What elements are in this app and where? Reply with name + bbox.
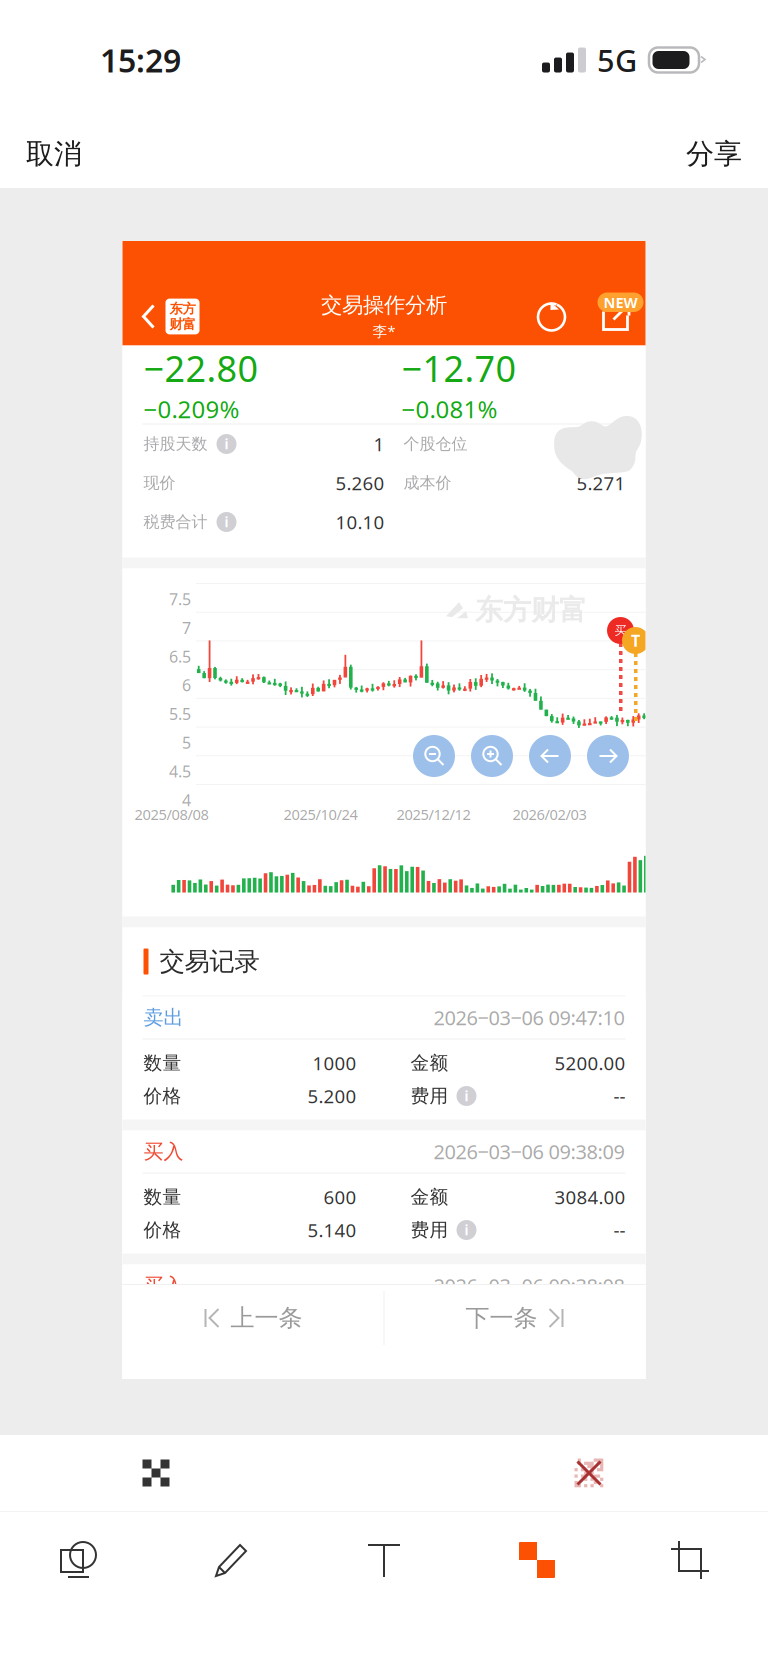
staticText: 现价 [143,473,175,493]
staticText: 李* [372,321,395,341]
staticText: 交易操作分析 [321,292,447,318]
staticText: -- [613,1084,625,1108]
button[interactable]: 左移 [529,735,571,777]
button[interactable]: 返回 [122,293,199,340]
staticText: 成本价 [403,473,451,493]
staticText: −22.80 [143,344,258,392]
button[interactable]: 画笔 [154,1512,307,1608]
staticText: 15:29 [100,39,181,81]
staticText: 600 [323,1185,356,1209]
staticText: 5.200 [307,1084,356,1108]
button[interactable]: 马赛克 [460,1512,613,1608]
staticText: 2026−03−06 09:38:08 [433,1272,624,1299]
staticText: 5.5 [169,703,191,724]
staticText: 卖出 [143,1005,183,1030]
staticText: 2026−03−06 09:38:09 [433,1138,624,1165]
staticText: 3084.00 [554,1185,625,1209]
staticText: 买入 [143,1139,183,1164]
staticText: 6.5 [169,646,191,667]
staticText: 东方财富 [475,593,587,627]
staticText: 2025/10/24 [283,804,357,824]
staticText: 费用 [410,1218,448,1241]
staticText: 1 [373,432,384,456]
staticText: 价格 [143,1084,181,1107]
staticText: i [224,435,228,453]
button[interactable]: 放大 [471,735,513,777]
staticText: 买 [614,623,626,638]
staticText: −0.081% [401,393,497,425]
button[interactable]: 文字 [307,1512,460,1608]
staticText: 4 [182,789,191,811]
button[interactable]: 模糊 [551,1435,627,1511]
button[interactable]: 刷新 [534,299,569,334]
staticText: 5.140 [307,1218,356,1242]
button[interactable]: 分享 [660,123,768,185]
staticText: i [224,513,228,531]
staticText: 2026/02/03 [512,804,586,824]
staticText: 上一条 [230,1303,302,1333]
staticText: 费用 [410,1084,448,1107]
staticText: 5.260 [335,471,384,495]
staticText: 1000 [312,1051,356,1075]
staticText: 税费合计 [143,512,207,532]
staticText: 2056.00 [554,1319,625,1343]
button[interactable]: 马赛克 [118,1435,194,1511]
button[interactable]: 取消 [0,123,108,185]
staticText: 2026−03−06 09:47:10 [433,1004,624,1031]
staticText: −0.209% [143,393,239,425]
staticText: i [464,1221,468,1239]
staticText: 买入 [143,1273,183,1298]
staticText: 7.5 [169,588,191,610]
staticText: 金额 [410,1185,448,1208]
staticText: −12.70 [401,344,516,392]
button[interactable]: 形状 [1,1512,154,1608]
staticText: 2025/12/12 [396,804,470,824]
staticText: 财富 [169,316,195,332]
button[interactable]: 缩小 [413,735,455,777]
staticText: NEW [603,292,637,312]
staticText: 5.271 [576,471,625,495]
staticText: 7 [182,617,191,638]
staticText: 下一条 [465,1303,537,1333]
staticText: 持股天数 [143,434,207,454]
button[interactable]: 上一条 [122,1285,383,1351]
staticText: 10.10 [335,510,384,534]
staticText: 价格 [143,1218,181,1241]
staticText: 个股仓位 [403,434,467,454]
staticText: 东方 [169,301,195,317]
staticText: 数量 [143,1185,181,1208]
staticText: T [631,630,640,651]
staticText: 4.5 [169,761,191,782]
button[interactable]: 下一条 [384,1285,645,1351]
staticText: 5 [182,732,191,753]
staticText: 分享 [686,137,742,171]
staticText: 交易记录 [159,946,259,977]
button[interactable]: 右移 [587,735,629,777]
staticText: -- [613,1218,625,1242]
staticText: 5200.00 [554,1051,625,1075]
staticText: 5G [597,40,637,80]
button[interactable]: 分享 [599,299,633,333]
staticText: 2025/08/08 [134,804,208,824]
staticText: i [464,1087,468,1105]
button[interactable]: 裁剪 [613,1512,766,1608]
staticText: 6 [182,674,191,696]
staticText: 金额 [410,1051,448,1074]
staticText: 取消 [26,137,82,171]
staticText: 数量 [143,1051,181,1074]
